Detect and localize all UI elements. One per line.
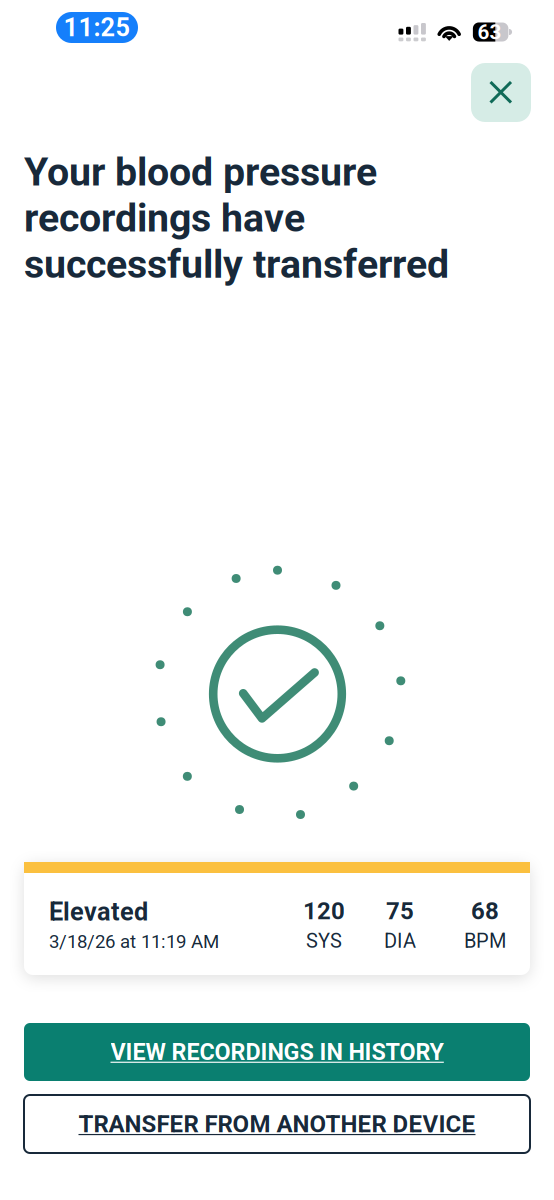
staticText: 120 xyxy=(303,897,345,925)
button[interactable]: TRANSFER FROM ANOTHER DEVICE xyxy=(24,1095,530,1153)
staticText: 75 xyxy=(386,897,414,925)
button[interactable]: Close xyxy=(471,63,531,122)
staticText: TRANSFER FROM ANOTHER DEVICE xyxy=(78,1110,475,1138)
staticText: 3/18/26 at 11:19 AM xyxy=(49,931,219,953)
staticText: BPM xyxy=(464,929,506,952)
staticText: Elevated xyxy=(49,897,148,927)
staticText: 11:25 xyxy=(63,13,130,42)
staticText: 68 xyxy=(471,897,499,925)
staticText: SYS xyxy=(306,929,342,952)
button[interactable]: VIEW RECORDINGS IN HISTORY xyxy=(24,1023,530,1081)
staticText: VIEW RECORDINGS IN HISTORY xyxy=(110,1038,443,1066)
staticText: DIA xyxy=(384,929,416,952)
staticText: 63 xyxy=(478,20,502,44)
staticText: Your blood pressure recordings have succ… xyxy=(24,149,449,287)
